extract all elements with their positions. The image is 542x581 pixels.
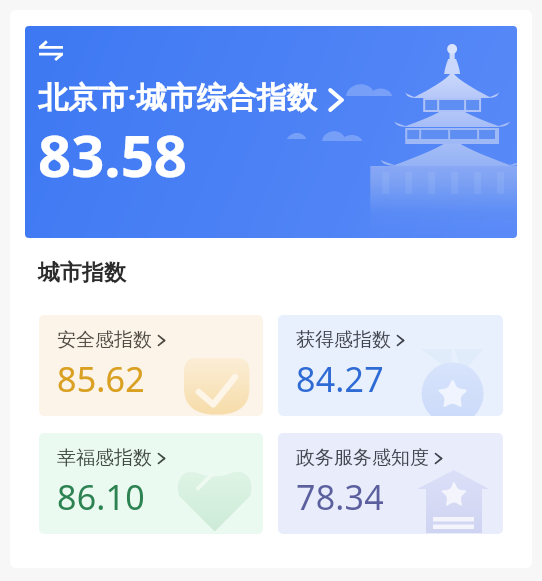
staticText: 幸福感指数	[57, 446, 152, 470]
staticText: 85.62	[57, 356, 145, 402]
button[interactable]: Switch city	[25, 26, 517, 238]
button[interactable]: 安全感指数	[39, 315, 263, 416]
staticText: 78.34	[296, 474, 384, 520]
staticText: 北京市·城市综合指数	[38, 76, 317, 117]
staticText: 83.58	[38, 115, 188, 194]
staticText: 城市指数	[38, 259, 126, 287]
staticText: 获得感指数	[296, 328, 391, 352]
staticText: 84.27	[296, 356, 384, 402]
button[interactable]: 幸福感指数	[39, 433, 263, 534]
button[interactable]: Switch city	[38, 38, 64, 64]
staticText: 安全感指数	[57, 328, 152, 352]
staticText: 86.10	[57, 474, 145, 520]
button[interactable]: 获得感指数	[278, 315, 503, 416]
button[interactable]: 政务服务感知度	[278, 433, 503, 534]
staticText: 政务服务感知度	[296, 446, 429, 470]
